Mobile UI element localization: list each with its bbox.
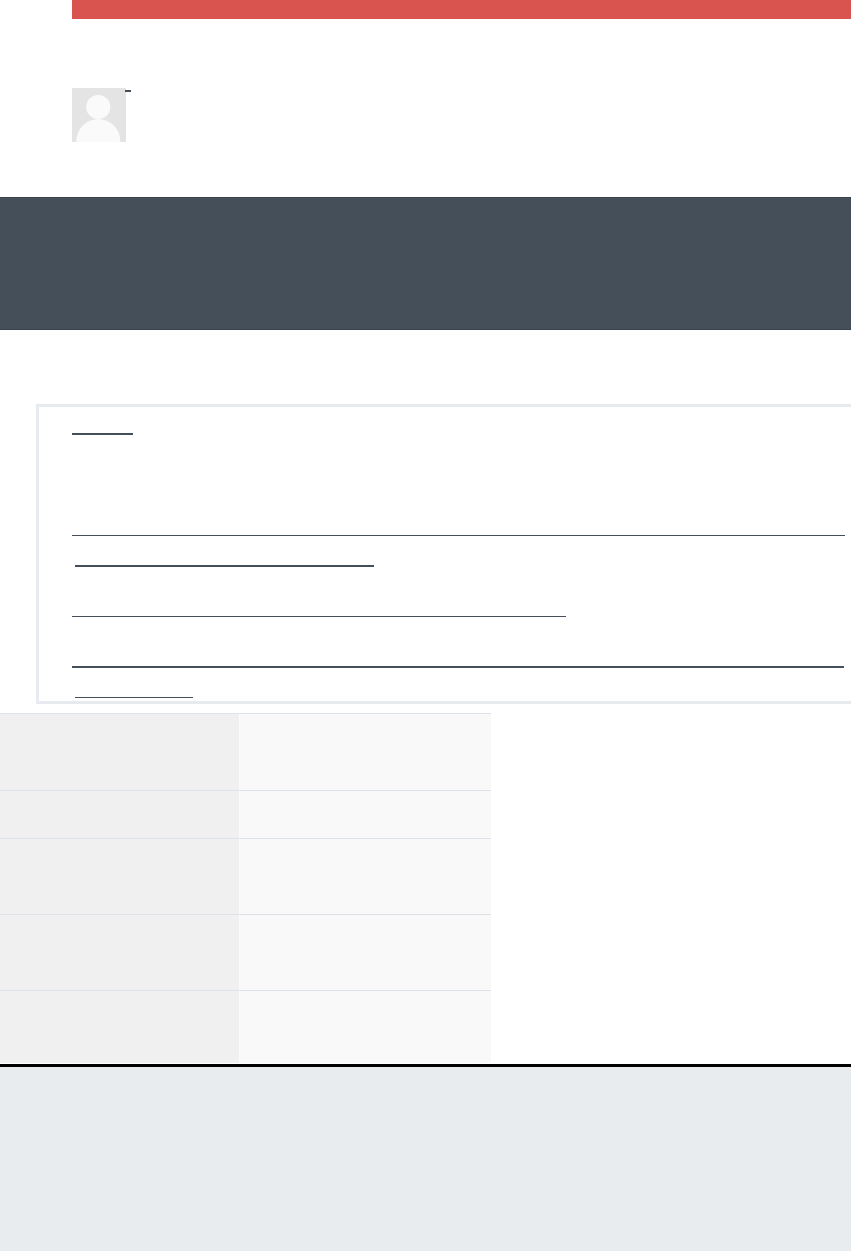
button[interactable]: Profile avatar (72, 88, 126, 142)
button[interactable]: Row 4 (0, 915, 491, 990)
button[interactable]: Details card (39, 407, 851, 701)
button[interactable]: Row 1 (0, 714, 491, 790)
button[interactable]: Row 5 (0, 991, 491, 1063)
button[interactable]: Row 3 (0, 839, 491, 914)
button[interactable]: Row 2 (0, 791, 491, 838)
